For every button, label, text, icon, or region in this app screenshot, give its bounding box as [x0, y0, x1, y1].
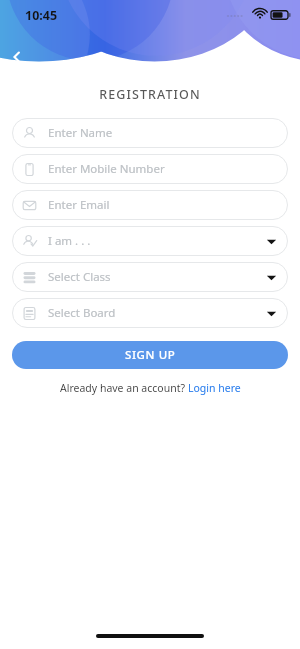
staticText: Enter Name: [48, 125, 278, 141]
button[interactable]: I am . . .: [12, 226, 288, 256]
button[interactable]: Back: [2, 42, 32, 72]
staticText: Enter Mobile Number: [48, 161, 278, 177]
button[interactable]: Login here: [188, 381, 241, 395]
button[interactable]: Enter Mobile Number: [12, 154, 288, 184]
staticText: Already have an account?: [60, 381, 188, 395]
staticText: Select Board: [48, 305, 266, 321]
staticText: I am . . .: [48, 233, 266, 249]
staticText: SIGN UP: [125, 347, 176, 363]
button[interactable]: Select Board: [12, 298, 288, 328]
button[interactable]: Select Class: [12, 262, 288, 292]
staticText: Login here: [188, 381, 241, 395]
staticText: REGISTRATION: [0, 86, 300, 103]
staticText: 10:45: [25, 7, 58, 24]
staticText: Enter Email: [48, 197, 278, 213]
button[interactable]: SIGN UP: [12, 341, 288, 369]
button[interactable]: Enter Name: [12, 118, 288, 148]
button[interactable]: Enter Email: [12, 190, 288, 220]
staticText: Select Class: [48, 269, 266, 285]
